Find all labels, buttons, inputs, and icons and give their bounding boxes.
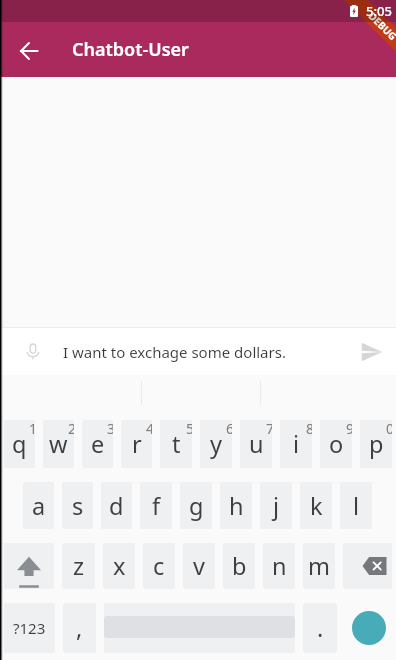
staticText: 1 [29,420,35,438]
button[interactable]: u [240,420,272,468]
button[interactable]: , [63,603,96,653]
button[interactable]: f [140,482,172,529]
button[interactable]: h [220,482,252,529]
button[interactable]: t [160,420,192,468]
staticText: k [310,490,323,522]
staticText: l [353,490,360,522]
button[interactable]: p [360,420,392,468]
staticText: x [113,550,126,582]
button[interactable]: a [23,482,54,529]
staticText: 9 [346,420,352,438]
button[interactable]: r [121,420,152,468]
button[interactable]: o [320,420,352,468]
button[interactable]: Backspace [343,543,392,589]
staticText: i [293,428,300,460]
button[interactable]: . [303,603,337,653]
button[interactable]: ?123 [4,603,55,653]
button[interactable]: q [4,420,35,468]
button[interactable]: x [103,543,135,589]
staticText: n [272,550,287,582]
button[interactable]: Send [351,328,393,375]
staticText: c [153,550,165,582]
staticText: 5:05 [366,2,392,20]
button[interactable]: i [280,420,312,468]
button[interactable]: d [101,482,132,529]
staticText: b [232,550,247,582]
staticText: r [132,428,142,460]
staticText: o [329,428,344,460]
staticText: DEBUG [366,9,396,43]
staticText: 0 [386,420,392,438]
staticText: ?123 [13,618,46,638]
staticText: z [73,550,85,582]
button[interactable] [104,603,295,653]
staticText: . [317,612,324,644]
staticText: w [49,428,68,460]
button[interactable]: Back [0,22,56,77]
staticText: I want to exchage some dollars. [63,342,286,362]
button[interactable]: Enter [352,611,386,645]
button[interactable]: Shift [4,543,54,589]
staticText: 7 [266,420,272,438]
button[interactable]: m [303,543,335,589]
button[interactable]: y [200,420,232,468]
button[interactable]: e [82,420,113,468]
staticText: 2 [68,420,74,438]
staticText: h [229,490,244,522]
staticText: Chatbot-User [72,37,189,62]
staticText: e [91,428,105,460]
button[interactable]: s [62,482,93,529]
button[interactable]: Voice input [0,328,50,375]
staticText: v [193,550,205,582]
staticText: f [152,490,161,522]
staticText: j [273,490,280,522]
staticText: 8 [306,420,312,438]
button[interactable]: v [183,543,215,589]
staticText: 5 [186,420,192,438]
staticText: g [189,490,204,522]
staticText: m [308,550,330,582]
staticText: d [109,490,124,522]
staticText: , [76,612,83,644]
staticText: 4 [146,420,152,438]
staticText: 3 [107,420,113,438]
button[interactable]: c [143,543,175,589]
staticText: p [369,428,384,460]
staticText: q [12,428,27,460]
button[interactable]: k [300,482,332,529]
button[interactable]: l [340,482,372,529]
staticText: s [72,490,84,522]
staticText: y [210,428,222,460]
button[interactable]: j [260,482,292,529]
button[interactable]: Voice input [0,328,396,375]
button[interactable]: g [180,482,212,529]
button[interactable]: z [62,543,95,589]
button[interactable]: b [223,543,255,589]
staticText: 6 [226,420,232,438]
button[interactable]: w [43,420,74,468]
button[interactable]: n [263,543,295,589]
staticText: t [172,428,181,460]
staticText: u [249,428,264,460]
staticText: a [32,490,46,522]
